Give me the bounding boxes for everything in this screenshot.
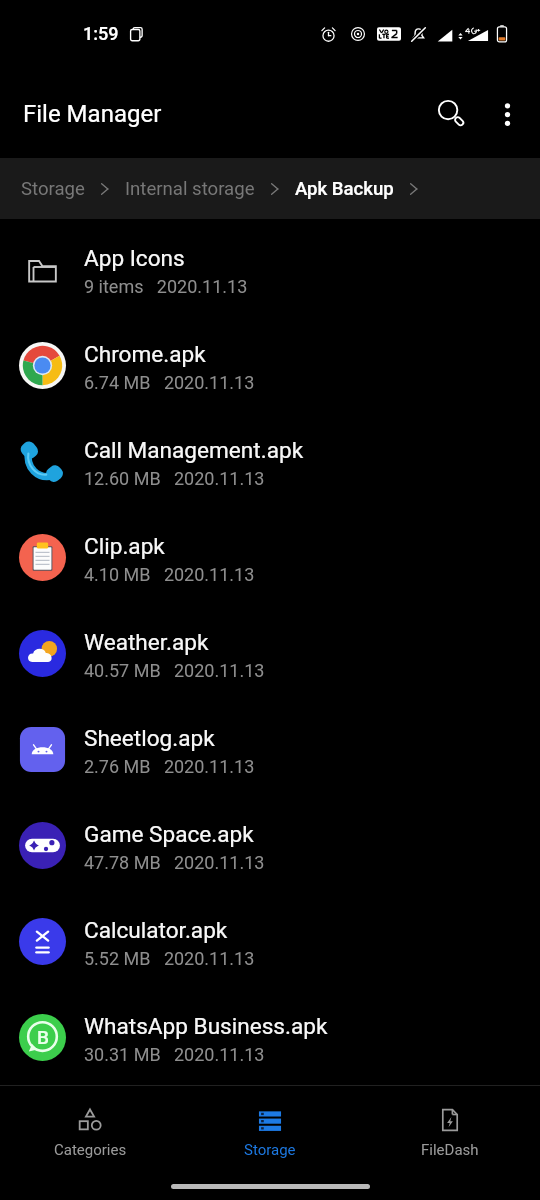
button[interactable]: Weather.apk	[0, 607, 540, 703]
staticText: Call Management.apk	[84, 437, 304, 463]
staticText: Clip.apk	[84, 533, 165, 559]
staticText: Weather.apk	[84, 629, 209, 655]
staticText: 40.57 MB 2020.11.13	[84, 660, 265, 681]
staticText: Calculator.apk	[84, 917, 228, 943]
button[interactable]: Call Management.apk	[0, 415, 540, 511]
button[interactable]: B	[0, 991, 540, 1087]
staticText: Storage	[21, 178, 85, 200]
staticText: 30.31 MB 2020.11.13	[84, 1044, 265, 1065]
button[interactable]: Clip.apk	[0, 511, 540, 607]
button[interactable]: Storage	[21, 158, 85, 219]
staticText: B	[37, 1026, 49, 1048]
staticText: Apk Backup	[295, 178, 394, 200]
staticText: File Manager	[23, 100, 162, 128]
staticText: FileDash	[421, 1141, 479, 1159]
staticText: 4.10 MB 2020.11.13	[84, 564, 255, 585]
staticText: 2.76 MB 2020.11.13	[84, 756, 255, 777]
button[interactable]: Calculator.apk	[0, 895, 540, 991]
button[interactable]: Chrome.apk	[0, 319, 540, 415]
button[interactable]: Categories	[0, 1086, 180, 1170]
staticText: Game Space.apk	[84, 821, 254, 847]
button[interactable]: Apk Backup	[295, 158, 394, 219]
staticText: App Icons	[84, 245, 185, 271]
button[interactable]: Search	[426, 88, 478, 140]
staticText: WhatsApp Business.apk	[84, 1013, 328, 1039]
button[interactable]: Sheetlog.apk	[0, 703, 540, 799]
button[interactable]: App Icons	[0, 223, 540, 319]
staticText: Internal storage	[125, 178, 255, 200]
staticText: 47.78 MB 2020.11.13	[84, 852, 265, 873]
staticText: Sheetlog.apk	[84, 725, 215, 751]
button[interactable]: Storage	[180, 1086, 360, 1170]
staticText: Chrome.apk	[84, 341, 206, 367]
staticText: 12.60 MB 2020.11.13	[84, 468, 265, 489]
staticText: 6.74 MB 2020.11.13	[84, 372, 255, 393]
staticText: 9 items 2020.11.13	[84, 276, 248, 297]
button[interactable]: FileDash	[360, 1086, 540, 1170]
staticText: Categories	[54, 1141, 127, 1159]
staticText: 5.52 MB 2020.11.13	[84, 948, 255, 969]
staticText: 1:59	[83, 23, 119, 44]
button[interactable]: Internal storage	[125, 158, 255, 219]
button[interactable]: Game Space.apk	[0, 799, 540, 895]
button[interactable]: More options	[481, 88, 533, 140]
staticText: Storage	[244, 1141, 296, 1159]
